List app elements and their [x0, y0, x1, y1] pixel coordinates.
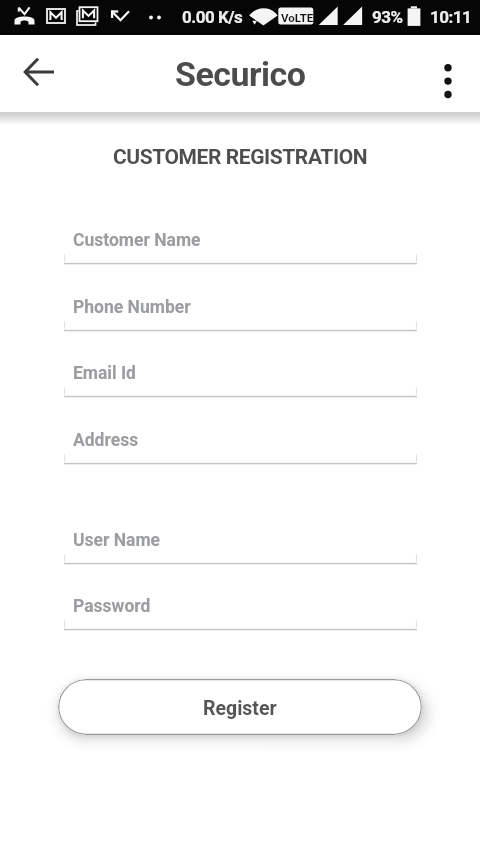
- staticText: 10:11: [430, 7, 472, 27]
- button[interactable]: Password: [58, 583, 422, 637]
- staticText: Email Id: [73, 363, 136, 384]
- staticText: Password: [73, 596, 151, 617]
- button[interactable]: Address: [58, 417, 422, 471]
- button[interactable]: Back: [7, 40, 70, 103]
- staticText: VoLTE: [281, 11, 314, 24]
- button[interactable]: Customer Name: [58, 217, 422, 271]
- staticText: Securico: [175, 54, 306, 94]
- staticText: Register: [203, 697, 277, 720]
- button[interactable]: Register: [58, 679, 422, 735]
- staticText: User Name: [73, 530, 161, 551]
- staticText: Address: [73, 430, 139, 451]
- staticText: Phone Number: [73, 297, 191, 318]
- button[interactable]: Phone Number: [58, 284, 422, 338]
- button[interactable]: More options: [422, 55, 474, 107]
- staticText: CUSTOMER REGISTRATION: [0, 145, 480, 170]
- staticText: Customer Name: [73, 230, 201, 251]
- staticText: 93%: [372, 7, 403, 27]
- button[interactable]: Email Id: [58, 350, 422, 404]
- staticText: 0.00 K/s: [182, 7, 243, 27]
- button[interactable]: User Name: [58, 517, 422, 571]
